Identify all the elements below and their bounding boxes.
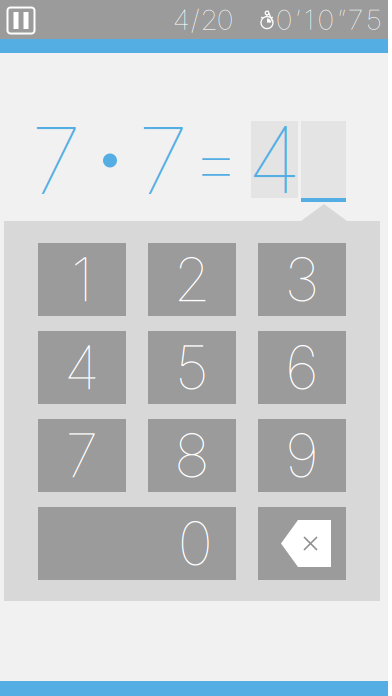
staticText: /: [191, 3, 199, 36]
staticText: 0: [177, 507, 212, 580]
staticText: 1: [71, 243, 93, 316]
staticText: 5: [175, 331, 209, 404]
staticText: 7: [31, 105, 81, 216]
staticText: 7: [65, 419, 98, 492]
staticText: =: [190, 111, 242, 210]
staticText: 2: [173, 243, 210, 316]
staticText: 7: [138, 105, 188, 216]
button[interactable]: Delete: [258, 507, 346, 580]
button[interactable]: 6: [258, 331, 346, 404]
button[interactable]: 5: [148, 331, 236, 404]
staticText: 0’10”75: [276, 3, 382, 36]
button[interactable]: Pause: [1, 0, 41, 41]
button[interactable]: 4: [38, 331, 126, 404]
button[interactable]: 8: [148, 419, 236, 492]
button[interactable]: 7: [38, 419, 126, 492]
staticText: 6: [285, 331, 319, 404]
staticText: 4: [64, 331, 100, 404]
button[interactable]: 9: [258, 419, 346, 492]
staticText: 4: [247, 104, 302, 215]
staticText: 20: [201, 3, 233, 36]
staticText: 4: [173, 3, 189, 36]
button[interactable]: 0: [38, 507, 236, 580]
staticText: 9: [285, 419, 319, 492]
button[interactable]: 3: [258, 243, 346, 316]
button[interactable]: 2: [148, 243, 236, 316]
button[interactable]: 1: [38, 243, 126, 316]
staticText: 8: [174, 419, 210, 492]
staticText: 3: [284, 243, 319, 316]
